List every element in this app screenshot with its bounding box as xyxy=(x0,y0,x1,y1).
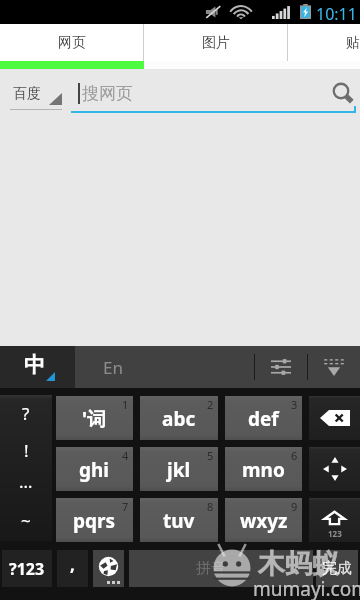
staticText: 9 xyxy=(291,499,298,514)
button[interactable]: 拼音 xyxy=(129,550,313,587)
button[interactable]: Hide keyboard xyxy=(308,346,360,388)
staticText: 贴吧 xyxy=(346,34,360,52)
staticText: mno xyxy=(242,457,285,483)
staticText: … xyxy=(19,470,33,493)
staticText: 完成 xyxy=(322,559,352,578)
staticText: abc xyxy=(162,406,196,432)
button[interactable]: jkl xyxy=(140,447,218,491)
staticText: 7 xyxy=(122,499,129,514)
staticText: def xyxy=(248,406,279,432)
staticText: En xyxy=(103,356,123,379)
staticText: pqrs xyxy=(73,508,116,534)
staticText: 中 xyxy=(24,352,45,378)
button[interactable]: 搜网页 xyxy=(66,69,360,117)
staticText: 123 xyxy=(328,528,342,539)
staticText: 百度 xyxy=(13,85,41,103)
button[interactable]: ! xyxy=(0,432,52,468)
button[interactable]: 中 xyxy=(0,346,75,388)
staticText: ghi xyxy=(79,457,110,483)
button[interactable]: wxyz xyxy=(225,498,302,542)
staticText: 木蚂蚁 xyxy=(258,547,339,581)
staticText: '词 xyxy=(82,406,107,432)
staticText: wxyz xyxy=(240,508,288,534)
button[interactable]: Shift xyxy=(309,498,360,542)
button[interactable]: Change input language xyxy=(93,550,124,587)
staticText: , xyxy=(70,553,75,576)
button[interactable]: Backspace xyxy=(309,396,360,440)
staticText: tuv xyxy=(163,508,195,534)
staticText: 3 xyxy=(291,397,298,412)
staticText: 搜网页 xyxy=(82,83,133,104)
staticText: 10:11 xyxy=(316,3,357,25)
button[interactable]: mno xyxy=(225,447,302,491)
button[interactable]: ? xyxy=(0,395,52,432)
staticText: 5 xyxy=(207,448,214,463)
button[interactable]: tuv xyxy=(140,498,218,542)
button[interactable]: 完成 xyxy=(316,550,358,587)
staticText: 8 xyxy=(207,499,214,514)
button[interactable]: 贴吧 xyxy=(288,24,360,61)
staticText: ! xyxy=(24,439,29,462)
button[interactable]: def xyxy=(225,396,302,440)
staticText: ? xyxy=(22,402,30,425)
button[interactable]: … xyxy=(0,468,52,505)
button[interactable]: pqrs xyxy=(56,498,133,542)
button[interactable]: 网页 xyxy=(0,24,144,61)
button[interactable]: 图片 xyxy=(144,24,288,61)
staticText: jkl xyxy=(167,457,191,483)
staticText: 1 xyxy=(122,397,129,412)
button[interactable]: ?123 xyxy=(2,550,52,587)
button[interactable]: '词 xyxy=(56,396,133,440)
staticText: 图片 xyxy=(202,34,230,52)
button[interactable]: Cursor keys xyxy=(309,447,360,491)
staticText: 6 xyxy=(291,448,298,463)
button[interactable]: ghi xyxy=(56,447,133,491)
button[interactable]: 百度 xyxy=(0,69,66,117)
staticText: 网页 xyxy=(58,34,86,52)
staticText: 4 xyxy=(122,448,129,463)
button[interactable]: ~ xyxy=(0,505,52,541)
button[interactable]: , xyxy=(57,550,88,587)
staticText: mumayi.com xyxy=(253,576,360,600)
staticText: 2 xyxy=(207,397,214,412)
button[interactable]: Input settings xyxy=(255,346,307,388)
button[interactable]: En xyxy=(75,346,254,388)
staticText: ~ xyxy=(21,509,31,532)
button[interactable]: abc xyxy=(140,396,218,440)
staticText: 拼音 xyxy=(196,559,226,578)
staticText: ?123 xyxy=(9,558,45,580)
